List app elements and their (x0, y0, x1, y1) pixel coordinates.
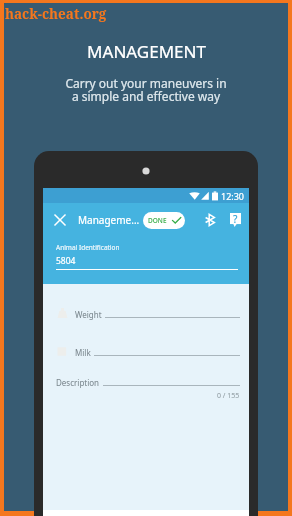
staticText: Weight (75, 309, 102, 320)
staticText: Carry out your maneuvers in a simple and… (65, 75, 227, 105)
staticText: Description (56, 377, 100, 388)
button[interactable]: Description (56, 377, 240, 388)
staticText: DONE (148, 216, 167, 225)
button[interactable]: Help (224, 209, 246, 231)
staticText: 5804 (56, 255, 76, 267)
staticText: ? (233, 212, 238, 226)
button[interactable]: Manageme... (78, 213, 140, 227)
button[interactable]: Milk (56, 346, 240, 358)
button[interactable]: Bluetooth (199, 209, 221, 231)
staticText: hack-cheat.org (5, 5, 107, 23)
staticText: MANAGEMENT (87, 40, 206, 63)
staticText: Milk (75, 347, 91, 358)
button[interactable]: DONE (143, 212, 185, 229)
staticText: 0 / 155 (217, 391, 240, 401)
button[interactable]: Weight (56, 308, 240, 320)
staticText: Animal Identification (56, 243, 120, 252)
staticText: 12:30 (221, 190, 245, 202)
button[interactable]: Close (49, 209, 71, 231)
